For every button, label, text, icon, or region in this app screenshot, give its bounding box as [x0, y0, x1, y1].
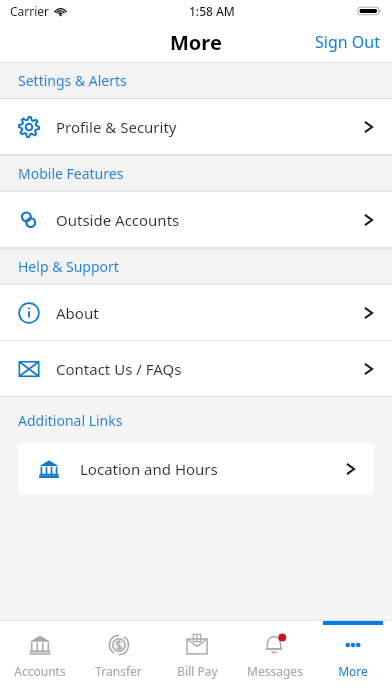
button[interactable]: Transfer [79, 621, 158, 696]
button[interactable]: Sign Out [303, 22, 392, 62]
staticText: Carrier [10, 3, 50, 19]
button[interactable]: Accounts [0, 621, 79, 696]
button[interactable]: More [314, 621, 392, 696]
staticText: More [170, 29, 222, 56]
staticText: Transfer [95, 663, 142, 679]
button[interactable]: Contact Us / FAQs [0, 341, 392, 396]
staticText: Mobile Features [18, 164, 124, 183]
staticText: Outside Accounts [56, 210, 363, 230]
staticText: Bill Pay [177, 663, 218, 679]
staticText: Messages [247, 663, 303, 679]
staticText: Additional Links [18, 411, 123, 430]
staticText: Contact Us / FAQs [56, 359, 363, 379]
staticText: Settings & Alerts [18, 71, 127, 90]
staticText: More [338, 663, 368, 679]
staticText: Location and Hours [80, 459, 345, 479]
button[interactable]: Bill Pay [158, 621, 236, 696]
button[interactable]: Profile & Security [0, 99, 392, 154]
button[interactable]: Messages [236, 621, 314, 696]
button[interactable]: Outside Accounts [0, 192, 392, 247]
button[interactable]: Location and Hours [18, 443, 374, 494]
staticText: Help & Support [18, 257, 119, 276]
staticText: 1:58 AM [189, 3, 235, 19]
button[interactable]: About [0, 285, 392, 340]
staticText: Sign Out [315, 31, 380, 53]
staticText: Profile & Security [56, 117, 363, 137]
staticText: Accounts [14, 663, 66, 679]
staticText: About [56, 303, 363, 323]
